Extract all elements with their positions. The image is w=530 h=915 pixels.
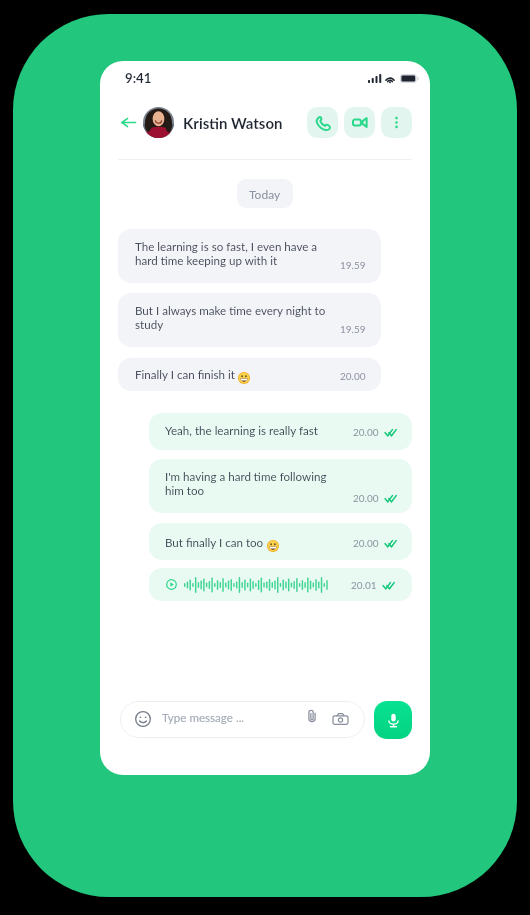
staticText: hard time keeping up with it — [135, 254, 278, 268]
staticText: 19.59 — [340, 323, 366, 335]
staticText: 20.00 — [353, 492, 379, 504]
button[interactable]: Record voice message — [374, 701, 412, 739]
button[interactable]: Attach file — [305, 709, 319, 723]
button[interactable]: Type message ... — [120, 701, 365, 738]
button[interactable]: Call — [307, 107, 338, 138]
staticText: 20.00 — [353, 426, 379, 438]
staticText: Kristin Watson — [183, 114, 283, 132]
staticText: 19.59 — [340, 259, 366, 271]
button[interactable]: Camera — [330, 709, 350, 729]
staticText: But finally I can too — [165, 536, 267, 550]
staticText: 20.00 — [353, 537, 379, 549]
staticText: I'm having a hard time following — [165, 470, 327, 484]
staticText: 9:41 — [125, 70, 152, 86]
staticText: Yeah, the learning is really fast — [165, 424, 318, 438]
staticText: 20.01 — [351, 579, 377, 591]
staticText: Finally I can finish it — [135, 368, 238, 382]
staticText: Type message ... — [162, 711, 245, 725]
button[interactable]: Play voice message — [149, 568, 412, 601]
staticText: The learning is so fast, I even have a — [135, 240, 318, 254]
button[interactable]: Video call — [344, 107, 375, 138]
staticText: Today — [249, 187, 281, 201]
button[interactable]: I'm having a hard time following — [149, 459, 412, 513]
button[interactable]: The learning is so fast, I even have a — [118, 229, 381, 283]
staticText: But I always make time every night to — [135, 304, 326, 318]
button[interactable]: More options — [381, 107, 412, 138]
button[interactable]: Yeah, the learning is really fast — [149, 413, 412, 450]
staticText: him too — [165, 484, 205, 498]
button[interactable]: Back — [118, 112, 139, 133]
button[interactable]: But finally I can too — [149, 523, 412, 560]
button[interactable]: Today — [237, 179, 293, 208]
button[interactable]: But I always make time every night to — [118, 293, 381, 347]
staticText: study — [135, 318, 164, 332]
staticText: 20.00 — [340, 370, 366, 382]
button[interactable]: Finally I can finish it — [118, 358, 381, 391]
